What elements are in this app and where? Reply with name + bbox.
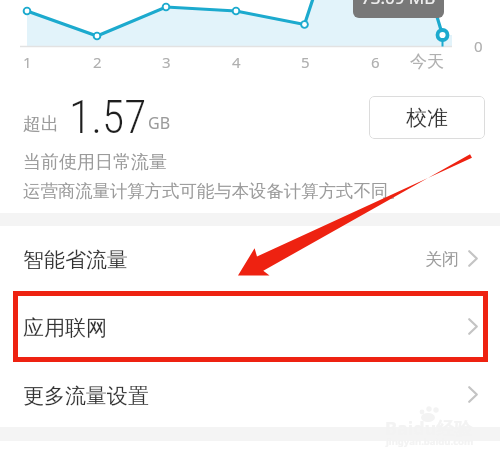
staticText: 关闭: [425, 249, 459, 270]
staticText: 4: [232, 52, 241, 72]
staticText: jingyan.baidu.com: [386, 435, 474, 448]
staticText: 73.09 MB: [361, 0, 436, 9]
other: Open: [468, 250, 478, 267]
button[interactable]: 校准: [369, 96, 485, 139]
staticText: 5: [301, 52, 310, 72]
staticText: 超出: [23, 113, 59, 136]
button[interactable]: 更多流量设置: [0, 362, 500, 429]
staticText: 更多流量设置: [23, 383, 149, 409]
staticText: 3: [162, 52, 171, 72]
staticText: 当前使用日常流量: [23, 151, 167, 174]
staticText: 2: [93, 52, 102, 72]
staticText: 运营商流量计算方式可能与本设备计算方式不同。: [23, 180, 406, 202]
staticText: Baidu经验: [385, 416, 473, 441]
staticText: 6: [371, 52, 380, 72]
staticText: GB: [148, 112, 171, 134]
button[interactable]: 应用联网: [0, 294, 500, 361]
staticText: 1: [23, 52, 32, 72]
staticText: 智能省流量: [23, 247, 128, 273]
staticText: 0: [474, 36, 483, 56]
other: Open: [468, 386, 478, 403]
staticText: 校准: [406, 105, 448, 131]
button[interactable]: 智能省流量: [0, 226, 500, 293]
staticText: 今天: [410, 51, 444, 71]
staticText: 应用联网: [23, 315, 107, 341]
staticText: 1.57: [69, 89, 147, 144]
other: Open: [468, 318, 478, 335]
